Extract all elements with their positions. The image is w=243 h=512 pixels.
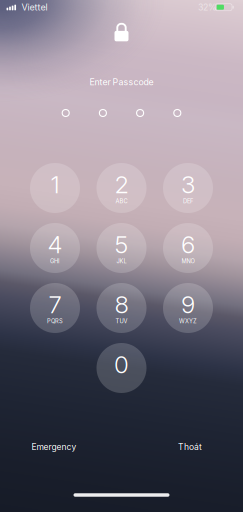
button[interactable]: Emergency (31, 442, 76, 452)
button[interactable]: 2 (96, 163, 146, 213)
button[interactable]: 3 (163, 163, 213, 213)
staticText: WXYZ (179, 318, 197, 325)
staticText: 6 (181, 230, 195, 259)
staticText: 0 (114, 350, 129, 379)
staticText: 5 (114, 230, 128, 259)
staticText: GHI (50, 258, 60, 265)
staticText: JKL (116, 258, 126, 265)
staticText: ABC (115, 198, 127, 205)
button[interactable]: 9 (163, 283, 213, 333)
staticText: 4 (47, 230, 62, 259)
staticText: 3 (181, 170, 195, 199)
button[interactable]: 6 (163, 223, 213, 273)
button[interactable]: Thoát (178, 442, 202, 452)
staticText: 2 (114, 170, 128, 199)
staticText: Thoát (178, 442, 202, 452)
button[interactable]: 5 (96, 223, 146, 273)
button[interactable]: 7 (30, 283, 80, 333)
button[interactable]: 0 (96, 343, 146, 393)
button[interactable]: 4 (30, 223, 80, 273)
staticText: 7 (48, 290, 61, 319)
staticText: 1 (50, 170, 59, 199)
button[interactable]: 8 (96, 283, 146, 333)
staticText: DEF (183, 198, 193, 205)
staticText: Viettel (22, 2, 48, 13)
staticText: Enter Passcode (89, 77, 153, 87)
staticText: 9 (181, 290, 195, 319)
staticText: MNO (181, 258, 194, 265)
staticText: Emergency (31, 442, 76, 452)
staticText: 32% (198, 2, 217, 13)
button[interactable]: 1 (30, 163, 80, 213)
staticText: PQRS (47, 318, 63, 325)
staticText: 8 (114, 290, 128, 319)
staticText: TUV (115, 318, 127, 325)
